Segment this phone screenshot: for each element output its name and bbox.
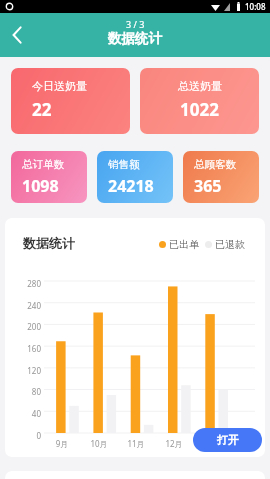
staticText: 22 xyxy=(32,98,52,121)
staticText: 数据统计 xyxy=(23,235,75,251)
staticText: 240 xyxy=(13,300,41,311)
staticText: 总订单数 xyxy=(22,158,64,171)
staticText: 已退款 xyxy=(215,238,245,251)
button[interactable] xyxy=(7,24,29,46)
staticText: 10月 xyxy=(84,438,114,449)
staticText: 1098 xyxy=(22,175,59,197)
staticText: 12月 xyxy=(159,438,189,449)
staticText: 数据统计 xyxy=(108,30,162,47)
button[interactable]: 打开 xyxy=(193,428,262,452)
button[interactable]: 今日送奶量 xyxy=(11,68,130,134)
staticText: 10:08 xyxy=(245,1,266,12)
staticText: 0 xyxy=(13,430,41,441)
staticText: 1022 xyxy=(180,98,219,121)
staticText: 打开 xyxy=(217,433,239,447)
staticText: 今日送奶量 xyxy=(32,79,87,93)
staticText: 已出单 xyxy=(169,238,199,251)
staticText: 120 xyxy=(13,365,41,376)
staticText: 160 xyxy=(13,343,41,354)
staticText: 24218 xyxy=(108,175,154,197)
staticText: 200 xyxy=(13,321,41,332)
staticText: 9月 xyxy=(47,438,77,449)
button[interactable]: 总顾客数 xyxy=(183,151,259,203)
staticText: 销售额 xyxy=(108,158,140,171)
staticText: 总送奶量 xyxy=(178,79,222,93)
button[interactable]: 销售额 xyxy=(97,151,173,203)
staticText: 365 xyxy=(194,175,222,197)
staticText: 80 xyxy=(13,386,41,397)
staticText: 40 xyxy=(13,408,41,419)
button[interactable]: 总送奶量 xyxy=(140,68,259,134)
staticText: 11月 xyxy=(121,438,151,449)
staticText: 总顾客数 xyxy=(194,158,236,171)
button[interactable]: 总订单数 xyxy=(11,151,87,203)
staticText: 280 xyxy=(13,278,41,289)
staticText: 3 / 3 xyxy=(126,18,145,30)
